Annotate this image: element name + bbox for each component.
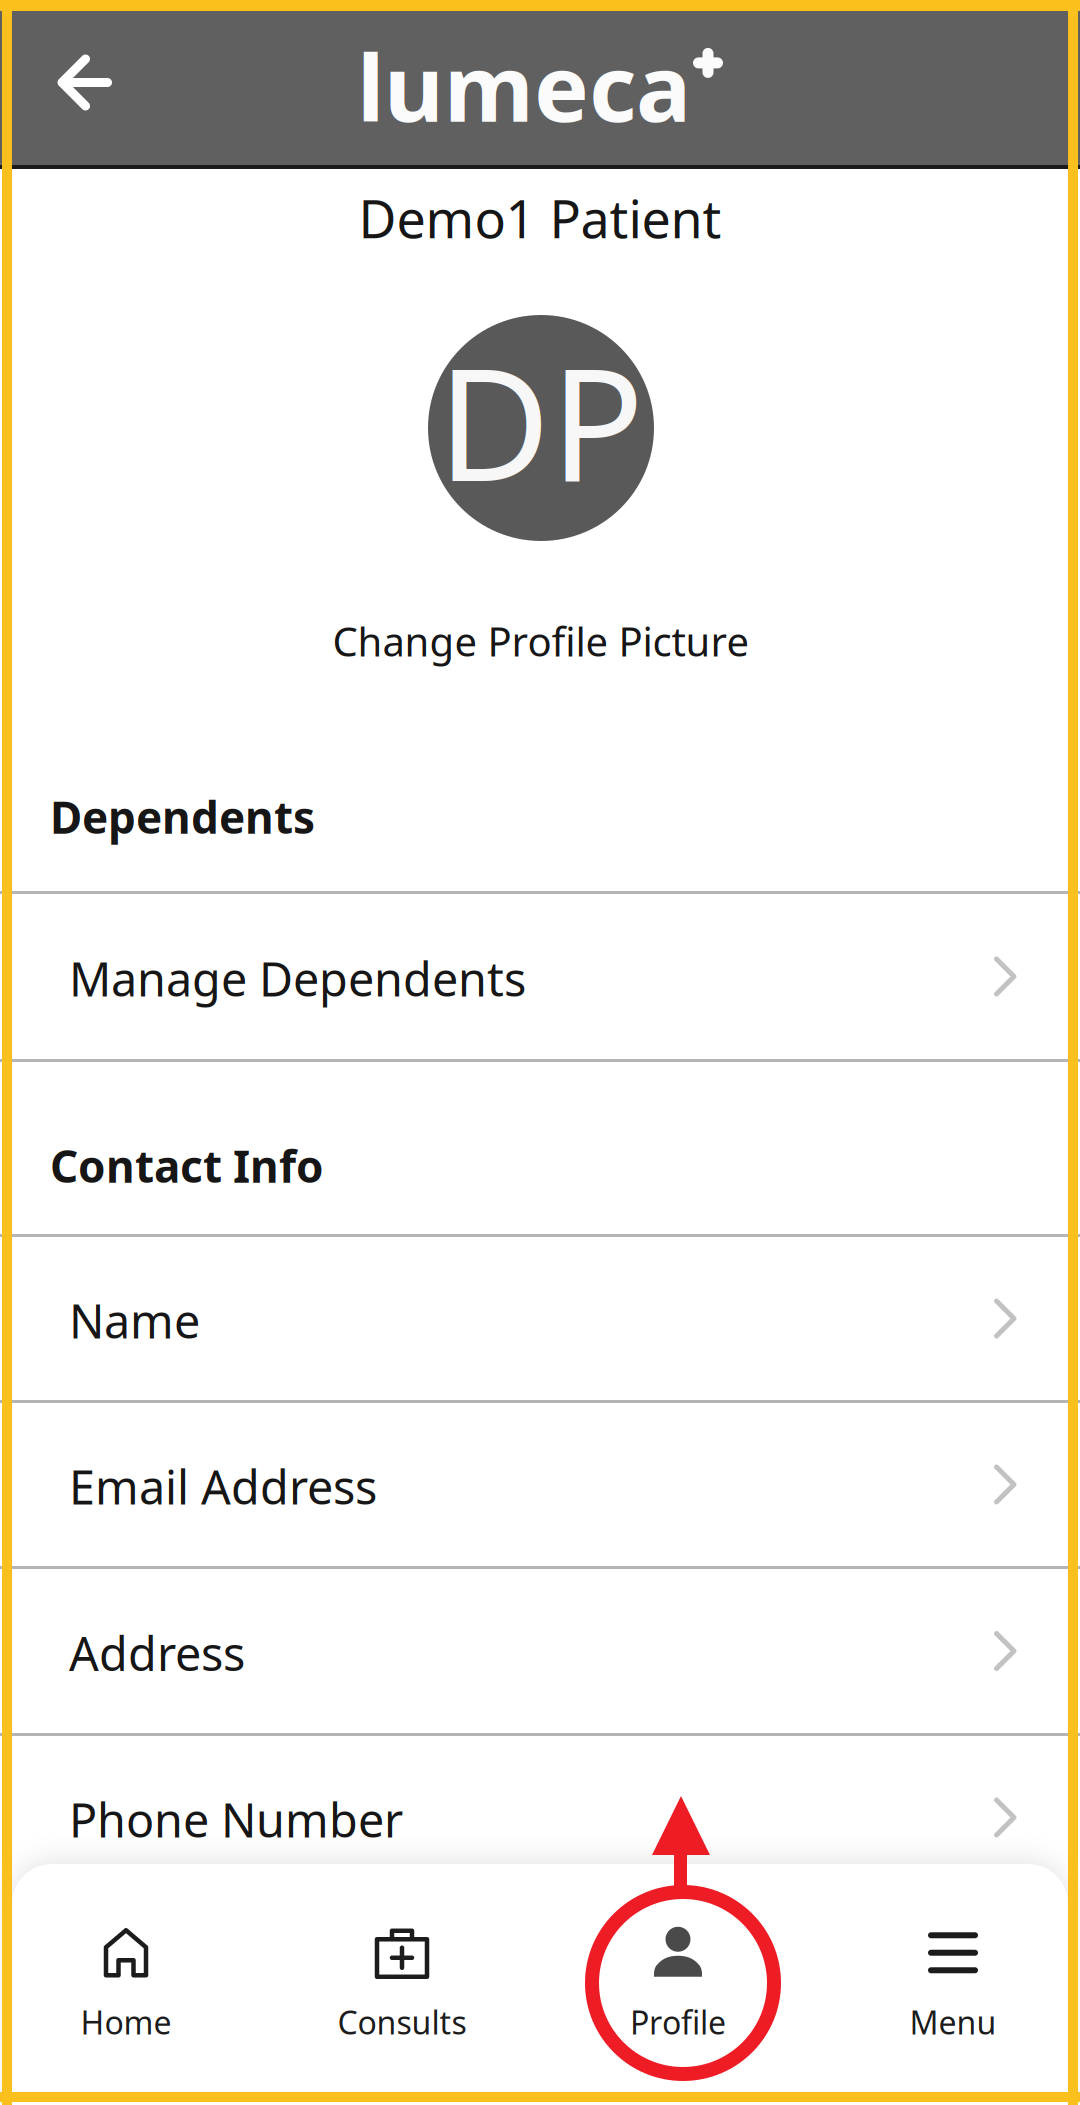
staticText: Profile (630, 2001, 726, 2043)
staticText: DP (437, 318, 644, 524)
staticText: Menu (909, 2001, 996, 2043)
button[interactable]: Phone Number (0, 1736, 1080, 1899)
button[interactable]: Email Address (0, 1403, 1080, 1566)
staticText: Name (69, 1289, 200, 1351)
staticText: Email Address (69, 1455, 377, 1517)
button[interactable]: Change Profile Picture (318, 600, 763, 681)
staticText: Phone Number (69, 1788, 403, 1850)
button[interactable]: Home (6, 1864, 246, 2104)
button[interactable]: Back (25, 0, 145, 165)
staticText: Contact Info (50, 1137, 324, 1195)
staticText: lumeca (357, 25, 691, 147)
staticText: Demo1 Patient (358, 183, 721, 253)
button[interactable]: Menu (833, 1864, 1073, 2104)
staticText: Dependents (50, 788, 315, 846)
button[interactable]: Profile (558, 1864, 798, 2104)
staticText: Change Profile Picture (332, 614, 749, 667)
staticText: Consults (337, 2001, 466, 2043)
staticText: Address (69, 1622, 245, 1684)
button[interactable]: Address (0, 1569, 1080, 1733)
staticText: Home (80, 2001, 171, 2043)
button[interactable]: Name (0, 1237, 1080, 1400)
button[interactable]: Manage Dependents (0, 894, 1080, 1059)
button[interactable]: Consults (282, 1864, 522, 2104)
staticText: Manage Dependents (69, 947, 526, 1009)
